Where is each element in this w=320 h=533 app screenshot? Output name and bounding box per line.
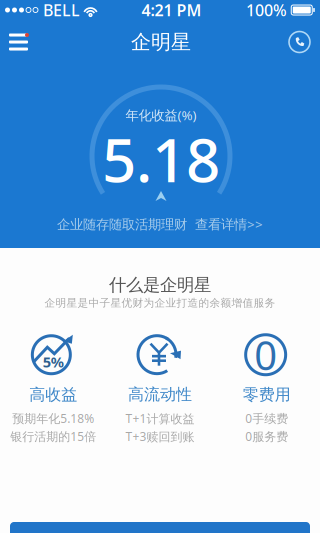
button[interactable]: 立即购买 [10, 522, 310, 533]
staticText: BELL [43, 0, 80, 21]
staticText: T+1计算收益 [125, 410, 194, 426]
staticText: T+3赎回到账 [125, 428, 194, 444]
staticText: 年化收益(%) [125, 106, 196, 124]
staticText: 0手续费 [245, 410, 288, 426]
button[interactable]: 企业随存随取活期理财 查看详情>> [0, 211, 320, 237]
staticText: 预期年化5.18% [12, 410, 94, 426]
staticText: 0 [254, 328, 277, 381]
button[interactable]: 5% [0, 332, 107, 444]
staticText: 企明星 [131, 30, 191, 54]
staticText: 0服务费 [245, 428, 288, 444]
staticText: 高流动性 [128, 385, 192, 404]
staticText: 什么是企明星 [109, 274, 211, 296]
staticText: 5.18 [102, 119, 220, 199]
button[interactable]: 0 [213, 332, 320, 444]
staticText: 100% [246, 0, 287, 21]
staticText: 5% [43, 352, 64, 371]
staticText: 4:21 PM [141, 0, 201, 21]
button[interactable]: 高流动性 [107, 332, 213, 444]
button[interactable]: Menu [0, 21, 37, 62]
staticText: 企业随存随取活期理财 查看详情>> [57, 215, 263, 233]
staticText: 零费用 [243, 385, 291, 404]
button[interactable]: Call customer service [282, 25, 316, 59]
staticText: 银行活期的15倍 [10, 428, 96, 444]
staticText: 企明星是中子星优财为企业打造的余额增值服务 [44, 296, 275, 309]
staticText: 高收益 [29, 385, 77, 404]
